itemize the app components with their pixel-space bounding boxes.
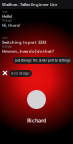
staticText: Richard (27, 117, 46, 124)
staticText: Mailbox - Talkie Engineer Lite (2, 2, 57, 7)
staticText: Just change the server port to Settings (15, 59, 70, 62)
staticText: Richard (2, 19, 12, 22)
button[interactable]: Just change the server port to Settings (13, 57, 72, 64)
staticText: Hmmm...how do I do that? (2, 48, 54, 54)
staticText: Richard (2, 45, 12, 48)
staticText: Switching to port 3333 (2, 39, 46, 45)
staticText: Tom (2, 36, 7, 39)
button[interactable]: Close (2, 70, 8, 76)
staticText: Send message (11, 72, 30, 75)
button[interactable]: Send message (9, 70, 32, 77)
staticText: Tom (2, 10, 7, 13)
staticText: Hi, there! (2, 22, 20, 28)
staticText: Hello! (2, 13, 12, 19)
